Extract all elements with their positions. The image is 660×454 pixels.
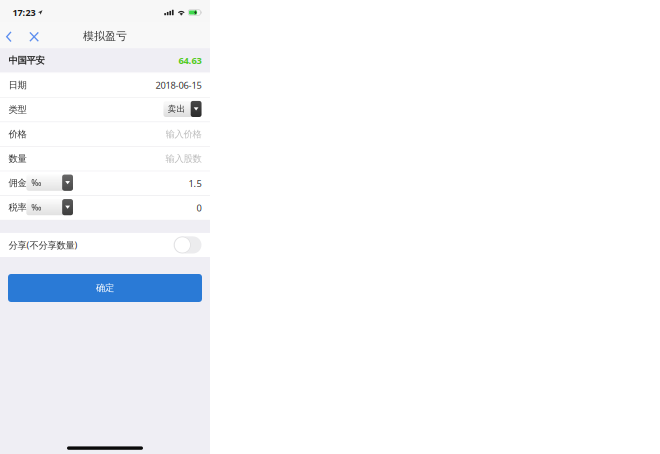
- staticText: 类型: [8, 104, 26, 115]
- button[interactable]: 分享(不分享数量): [173, 236, 201, 253]
- staticText: 卖出: [167, 103, 185, 114]
- staticText: 2018-06-15: [155, 79, 201, 91]
- button[interactable]: 价格: [0, 122, 210, 147]
- button[interactable]: 中国平安: [0, 48, 210, 73]
- staticText: 分享(不分享数量): [8, 239, 77, 251]
- staticText: 1.5: [188, 177, 201, 190]
- button[interactable]: 佣金: [0, 171, 210, 196]
- staticText: 64.63: [178, 54, 201, 67]
- staticText: ‰: [31, 201, 41, 213]
- staticText: 确定: [96, 282, 114, 294]
- button[interactable]: 分享(不分享数量): [0, 233, 210, 258]
- staticText: 日期: [8, 79, 26, 91]
- button[interactable]: 日期: [0, 73, 210, 98]
- staticText: ‰: [31, 177, 41, 188]
- staticText: 数量: [8, 153, 26, 165]
- button[interactable]: 税率: [0, 196, 210, 220]
- button[interactable]: Close: [24, 22, 44, 48]
- staticText: 税率: [8, 201, 26, 214]
- button[interactable]: Back: [0, 22, 24, 48]
- staticText: 价格: [8, 128, 26, 140]
- button[interactable]: Picker: [26, 199, 73, 217]
- button[interactable]: 确定: [8, 274, 202, 302]
- button[interactable]: Picker: [26, 175, 73, 192]
- button[interactable]: 数量: [0, 147, 210, 171]
- staticText: 中国平安: [8, 55, 44, 66]
- staticText: 输入股数: [165, 153, 201, 165]
- staticText: 模拟盈亏: [83, 29, 127, 43]
- staticText: 17:23: [12, 6, 35, 19]
- staticText: 输入价格: [165, 128, 201, 140]
- staticText: 0: [196, 201, 201, 214]
- staticText: 佣金: [8, 177, 26, 190]
- button[interactable]: Picker: [163, 101, 201, 118]
- button[interactable]: 类型: [0, 98, 210, 122]
